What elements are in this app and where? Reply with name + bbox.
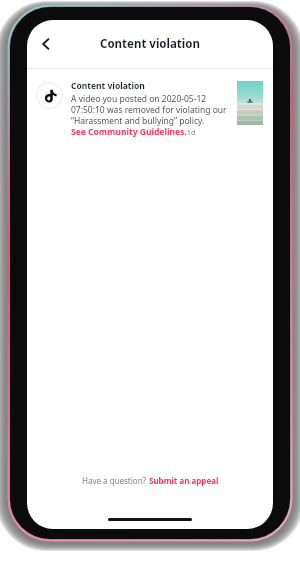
staticText: Content violation xyxy=(71,80,145,92)
staticText: Submit an appeal xyxy=(149,475,219,486)
button[interactable]: Back xyxy=(31,29,61,59)
button[interactable]: Video thumbnail xyxy=(237,81,263,125)
staticText: A video you posted on 2020-05-12 07:50:1… xyxy=(71,93,231,126)
staticText: Content violation xyxy=(100,36,200,52)
button[interactable]: Content violation xyxy=(27,69,273,149)
staticText: See Community Guidelines.1d xyxy=(71,126,196,138)
staticText: Have a question? xyxy=(82,475,149,486)
button[interactable]: Submit an appeal xyxy=(149,475,219,486)
